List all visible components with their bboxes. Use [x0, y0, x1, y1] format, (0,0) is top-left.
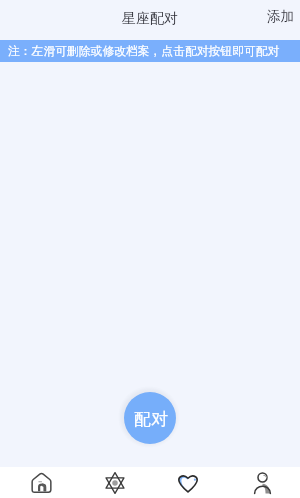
button[interactable]: 配对	[124, 392, 176, 444]
staticText: 注：左滑可删除或修改档案，点击配对按钮即可配对	[8, 44, 280, 59]
staticText: 添加	[267, 8, 294, 25]
button[interactable]: Profile	[225, 467, 299, 498]
button[interactable]: Matches	[151, 467, 225, 498]
staticText: 星座配对	[122, 10, 178, 28]
button[interactable]: Home	[5, 467, 78, 498]
button[interactable]: Horoscope	[78, 467, 151, 498]
button[interactable]: 添加	[255, 2, 300, 35]
staticText: 配对	[134, 409, 168, 430]
